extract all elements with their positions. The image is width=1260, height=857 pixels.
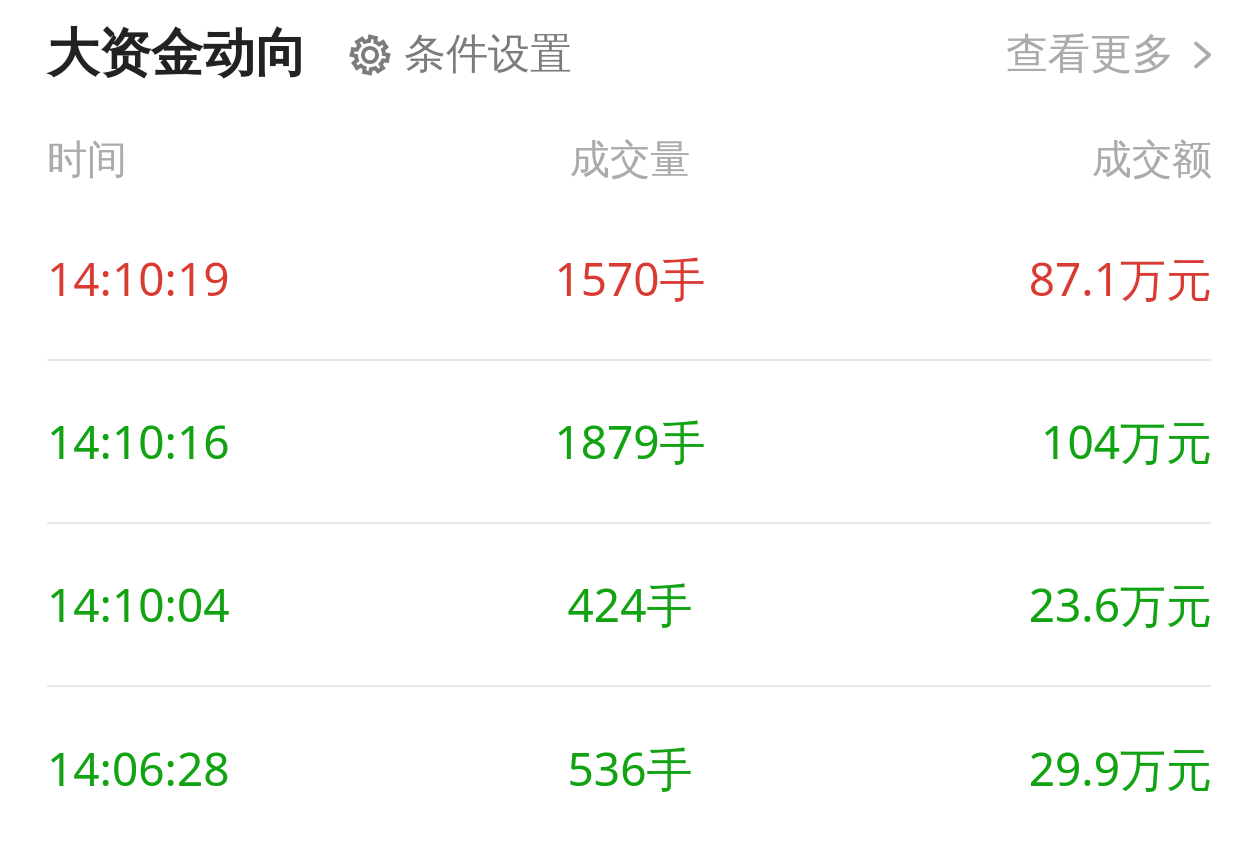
staticText: 424手 [436,573,824,636]
staticText: 1879手 [436,410,824,473]
staticText: 时间 [47,134,436,184]
staticText: 14:10:16 [47,410,436,473]
button[interactable]: 14:10:19 [0,198,1260,361]
staticText: 14:10:04 [47,573,436,636]
staticText: 查看更多 [1006,28,1174,81]
other: 条件设置 [347,32,393,78]
staticText: 1570手 [436,247,824,310]
staticText: 14:10:19 [47,247,436,310]
staticText: 成交量 [436,134,824,184]
staticText: 87.1万元 [824,247,1212,310]
staticText: 条件设置 [404,28,572,81]
staticText: 536手 [436,737,824,800]
staticText: 29.9万元 [824,737,1212,800]
staticText: 大资金动向 [47,21,307,87]
other: 查看更多 [1188,38,1216,72]
staticText: 成交额 [824,134,1212,184]
staticText: 23.6万元 [824,573,1212,636]
button[interactable]: 14:06:28 [0,687,1260,850]
button[interactable]: 14:10:04 [0,524,1260,687]
button[interactable]: 条件设置 [347,28,572,81]
staticText: 14:06:28 [47,737,436,800]
staticText: 104万元 [824,410,1212,473]
button[interactable]: 14:10:16 [0,361,1260,524]
button[interactable]: 查看更多 [1006,28,1216,81]
